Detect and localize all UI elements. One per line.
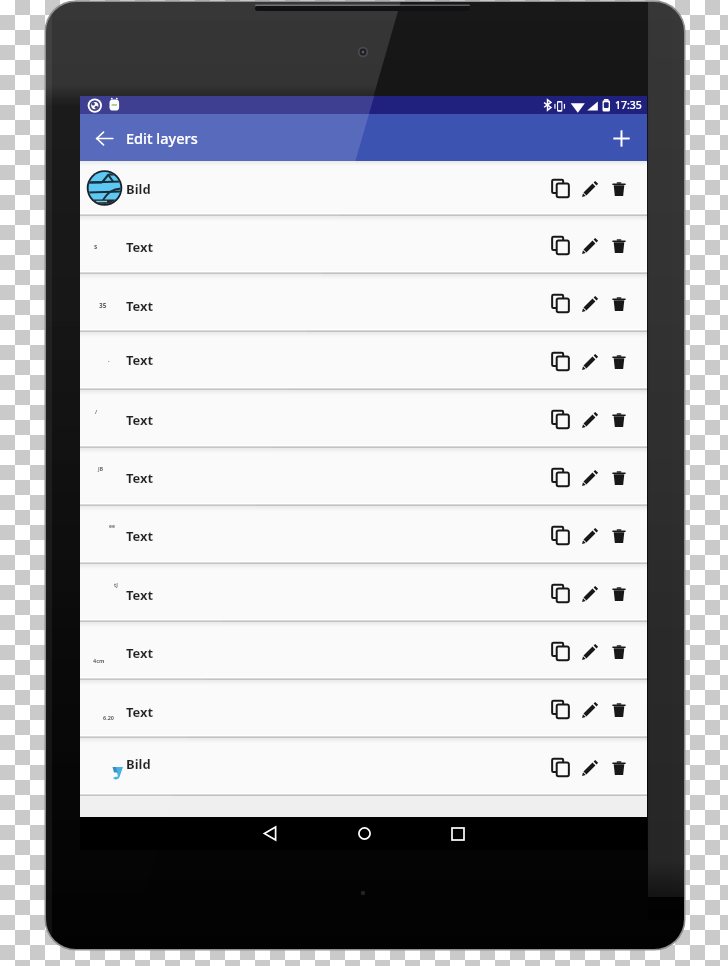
button[interactable]: - xyxy=(80,332,647,390)
button[interactable]: Add layer xyxy=(603,120,639,156)
staticText: / xyxy=(95,409,98,416)
button[interactable]: Duplicate layer xyxy=(546,289,575,318)
button[interactable]: Delete layer xyxy=(604,231,633,260)
button[interactable]: Duplicate layer xyxy=(546,521,575,550)
button[interactable]: Edit layer xyxy=(575,463,604,492)
button[interactable]: 6.20 xyxy=(80,680,647,738)
button[interactable]: Back xyxy=(242,817,298,850)
button[interactable]: Duplicate layer xyxy=(546,463,575,492)
button[interactable]: Edit layer xyxy=(575,753,604,782)
button[interactable]: 35 xyxy=(80,274,647,332)
button[interactable]: Delete layer xyxy=(604,405,633,434)
staticText: 35 xyxy=(99,301,107,309)
button[interactable]: Duplicate layer xyxy=(546,695,575,724)
button[interactable]: Edit layer xyxy=(575,405,604,434)
staticText: 4cm xyxy=(93,657,105,664)
button[interactable]: Bild xyxy=(80,161,647,216)
button[interactable]: Duplicate layer xyxy=(546,231,575,260)
staticText: Text xyxy=(126,411,154,429)
button[interactable]: Edit layer xyxy=(575,289,604,318)
button[interactable]: Navigate up xyxy=(86,120,122,156)
button[interactable]: Duplicate layer xyxy=(546,753,575,782)
staticText: ee xyxy=(109,523,115,530)
staticText: Text xyxy=(126,351,154,369)
button[interactable]: Delete layer xyxy=(604,463,633,492)
staticText: Bild xyxy=(126,755,151,773)
staticText: tJ xyxy=(114,582,118,589)
button[interactable]: Delete layer xyxy=(604,695,633,724)
staticText: Text xyxy=(126,527,154,545)
staticText: Bild xyxy=(126,180,151,198)
button[interactable]: Edit layer xyxy=(575,579,604,608)
button[interactable]: ee xyxy=(80,506,647,564)
button[interactable]: Delete layer xyxy=(604,637,633,666)
button[interactable]: Duplicate layer xyxy=(546,174,575,203)
button[interactable]: Delete layer xyxy=(604,521,633,550)
button[interactable]: Delete layer xyxy=(604,753,633,782)
button[interactable]: Home xyxy=(336,817,392,850)
button[interactable]: s xyxy=(80,216,647,274)
button[interactable]: Edit layer xyxy=(575,347,604,376)
button[interactable]: Duplicate layer xyxy=(546,579,575,608)
staticText: Text xyxy=(126,469,154,487)
staticText: Text xyxy=(126,703,154,721)
button[interactable]: Duplicate layer xyxy=(546,405,575,434)
button[interactable]: Edit layer xyxy=(575,231,604,260)
button[interactable]: Delete layer xyxy=(604,289,633,318)
button[interactable]: Recent apps xyxy=(430,817,486,850)
staticText: s xyxy=(94,242,98,250)
button[interactable]: Delete layer xyxy=(604,579,633,608)
button[interactable]: Duplicate layer xyxy=(546,637,575,666)
staticText: JB xyxy=(98,466,103,473)
button[interactable]: Edit layer xyxy=(575,174,604,203)
button[interactable]: tJ xyxy=(80,564,647,622)
staticText: Edit layers xyxy=(126,128,198,148)
button[interactable]: Delete layer xyxy=(604,347,633,376)
button[interactable]: Edit layer xyxy=(575,637,604,666)
staticText: Text xyxy=(126,297,154,315)
staticText: - xyxy=(108,358,110,364)
button[interactable]: Bild xyxy=(80,738,647,796)
button[interactable]: Delete layer xyxy=(604,174,633,203)
button[interactable]: Duplicate layer xyxy=(546,347,575,376)
button[interactable]: 4cm xyxy=(80,622,647,680)
staticText: 17:35 xyxy=(615,98,642,112)
button[interactable]: JB xyxy=(80,448,647,506)
staticText: 6.20 xyxy=(103,714,114,721)
staticText: Text xyxy=(126,238,154,256)
button[interactable]: Edit layer xyxy=(575,521,604,550)
button[interactable]: / xyxy=(80,390,647,448)
staticText: Text xyxy=(126,586,154,604)
staticText: Text xyxy=(126,644,154,662)
button[interactable]: Edit layer xyxy=(575,695,604,724)
